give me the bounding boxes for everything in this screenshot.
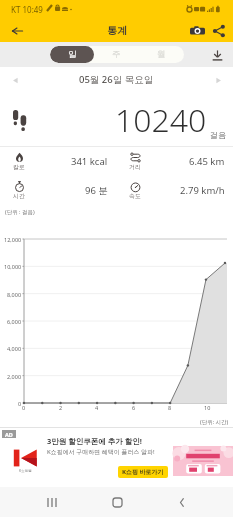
staticText: 속도 (129, 192, 141, 200)
staticText: 칼로 (13, 163, 25, 171)
staticText: 통계 (107, 24, 127, 37)
button[interactable]: Back (6, 20, 28, 42)
staticText: 0 (18, 400, 22, 407)
staticText: 6 (132, 404, 136, 411)
staticText: 8 (168, 404, 172, 411)
button[interactable]: Next day (209, 71, 227, 89)
staticText: 10,000 (4, 263, 22, 270)
staticText: 2,000 (7, 373, 22, 380)
button[interactable]: 주 (94, 46, 139, 63)
staticText: 월 (157, 49, 166, 60)
button[interactable]: Download (208, 46, 226, 64)
staticText: 시간 (13, 192, 25, 200)
staticText: 2.79 km/h (180, 184, 225, 197)
staticText: 05월 26일 목요일 (79, 73, 154, 86)
staticText: K쇼핑 바로가기 (122, 468, 164, 476)
staticText: 0 (22, 404, 26, 411)
staticText: 거리 (129, 163, 141, 171)
staticText: 4 (95, 404, 99, 411)
button[interactable]: 칼로 (0, 147, 116, 176)
staticText: 96 분 (85, 184, 108, 197)
button[interactable]: Capture (186, 20, 208, 42)
button[interactable]: 속도 (116, 176, 233, 205)
staticText: K쇼핑몰 (19, 468, 32, 473)
button[interactable]: 월 (139, 46, 184, 63)
button[interactable]: Share (208, 20, 230, 42)
button[interactable]: Recent apps (30, 487, 74, 517)
staticText: 3만원 할인쿠폰에 추가 할인! (47, 436, 142, 446)
staticText: 6,000 (7, 318, 22, 325)
button[interactable]: 시간 (0, 176, 116, 205)
staticText: 4,000 (7, 345, 22, 352)
staticText: 10240 (115, 98, 207, 142)
staticText: 2 (59, 404, 63, 411)
button[interactable]: K쇼핑 바로가기 (118, 466, 168, 478)
button[interactable]: Back (160, 487, 204, 517)
staticText: AD (5, 431, 13, 438)
staticText: K쇼핑에서 구매하면 혜택이 플러스 알파! (47, 448, 155, 456)
button[interactable]: Home (95, 487, 139, 517)
staticText: 8,000 (7, 291, 22, 298)
staticText: 10 (204, 404, 211, 411)
staticText: 주 (112, 49, 121, 60)
staticText: 6.45 km (189, 155, 225, 168)
button[interactable]: Previous day (6, 71, 24, 89)
button[interactable]: 일 (50, 46, 94, 63)
staticText: 12,000 (4, 236, 22, 243)
staticText: 걸음 (210, 130, 226, 140)
staticText: (단위 : 걸음) (5, 208, 35, 216)
staticText: (단위: 시간) (200, 418, 229, 426)
button[interactable]: AD (0, 427, 233, 487)
button[interactable]: 거리 (116, 147, 233, 176)
staticText: KT 10:49 (11, 4, 43, 15)
staticText: 341 kcal (71, 155, 108, 168)
staticText: 일 (68, 49, 77, 60)
